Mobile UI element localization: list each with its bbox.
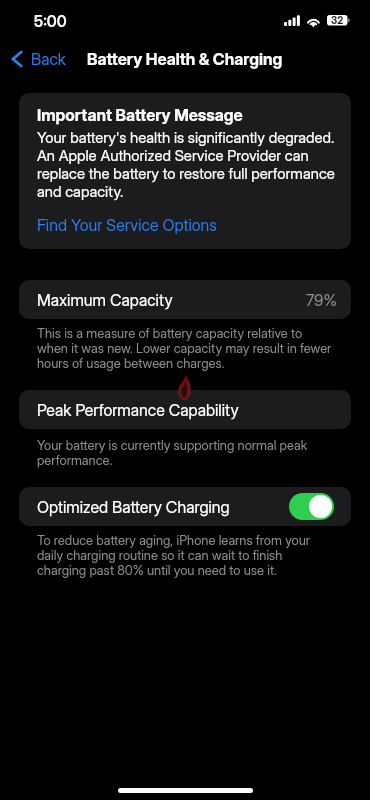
staticText: This is a measure of battery capacity re…	[37, 326, 332, 371]
button[interactable]: Maximum Capacity	[37, 280, 337, 319]
button[interactable]: Peak Performance Capability	[37, 390, 337, 429]
staticText: 79%	[306, 290, 337, 309]
button[interactable]: Find Your Service Options	[37, 216, 217, 235]
staticText: Peak Performance Capability	[37, 400, 239, 419]
staticText: Your battery's health is significantly d…	[37, 129, 345, 201]
staticText: 32	[331, 14, 344, 26]
staticText: Find Your Service Options	[37, 216, 217, 235]
staticText: To reduce battery aging, iPhone learns f…	[37, 533, 332, 578]
staticText: 5:00	[34, 12, 67, 31]
staticText: Back	[31, 49, 66, 68]
staticText: Maximum Capacity	[37, 290, 173, 309]
staticText: Important Battery Message	[37, 106, 243, 125]
staticText: Optimized Battery Charging	[37, 497, 230, 516]
staticText: Your battery is currently supporting nor…	[37, 438, 332, 468]
staticText: Battery Health & Charging	[87, 49, 283, 69]
button[interactable]: Optimized Battery Charging toggle	[289, 493, 334, 520]
other: Cellular signal	[284, 15, 301, 26]
button[interactable]: Back	[11, 49, 66, 68]
other: Wi-Fi	[306, 15, 321, 26]
